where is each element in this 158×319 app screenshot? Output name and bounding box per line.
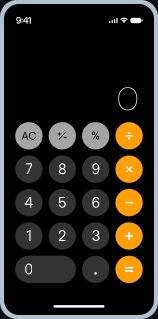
button[interactable]: AC <box>15 122 43 149</box>
button[interactable]: 0 <box>15 256 76 283</box>
button[interactable]: 5 <box>49 189 76 216</box>
button[interactable]: Plus <box>115 222 143 250</box>
button[interactable]: 6 <box>82 189 109 216</box>
staticText: 4 <box>24 194 33 211</box>
button[interactable]: Multiply <box>115 155 143 183</box>
button[interactable]: Divide <box>115 122 143 149</box>
button[interactable]: Minus <box>115 189 143 216</box>
button[interactable]: Decimal point <box>82 256 109 283</box>
staticText: 7 <box>25 161 32 178</box>
button[interactable]: 4 <box>15 189 43 216</box>
staticText: 1 <box>26 227 31 244</box>
staticText: 8 <box>58 161 66 178</box>
staticText: 0 <box>24 261 33 278</box>
staticText: 2 <box>58 227 66 244</box>
button[interactable]: Plus minus <box>49 122 76 149</box>
button[interactable]: 8 <box>49 155 76 183</box>
button[interactable]: 1 <box>15 222 43 250</box>
staticText: % <box>91 130 100 142</box>
staticText: 3 <box>92 227 100 244</box>
staticText: 5 <box>58 194 66 211</box>
staticText: 9:41 <box>16 15 31 26</box>
staticText: 0 <box>117 77 139 121</box>
button[interactable]: 7 <box>15 155 43 183</box>
staticText: 9 <box>92 161 100 178</box>
staticText: 6 <box>92 194 100 211</box>
button[interactable]: 9 <box>82 155 109 183</box>
button[interactable]: 3 <box>82 222 109 250</box>
button[interactable]: 2 <box>49 222 76 250</box>
button[interactable]: Equals <box>115 256 143 283</box>
button[interactable]: % <box>82 122 109 149</box>
staticText: AC <box>21 129 36 142</box>
